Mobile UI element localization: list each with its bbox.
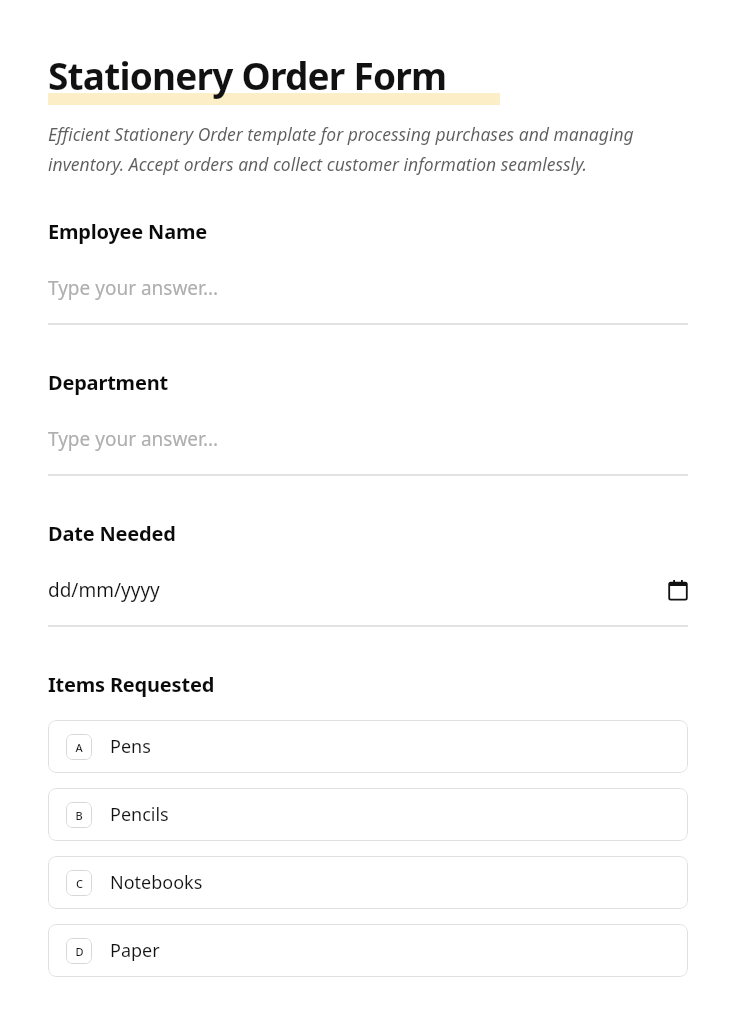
staticText: Type your answer... [48, 275, 688, 301]
button[interactable]: dd/mm/yyyy [48, 577, 688, 603]
staticText: Items Requested [48, 671, 215, 698]
staticText: Stationery Order Form [48, 50, 447, 100]
button[interactable]: C [48, 856, 688, 909]
other: Open date picker [668, 580, 688, 600]
button[interactable]: Type your answer... [48, 426, 688, 452]
staticText: Notebooks [110, 870, 203, 895]
staticText: Pencils [110, 802, 169, 827]
staticText: dd/mm/yyyy [48, 577, 668, 603]
staticText: D [75, 944, 84, 959]
button[interactable]: B [48, 788, 688, 841]
staticText: A [75, 740, 83, 755]
staticText: Date Needed [48, 520, 176, 547]
staticText: B [75, 808, 83, 823]
button[interactable]: A [48, 720, 688, 773]
button[interactable]: Type your answer... [48, 275, 688, 301]
staticText: Pens [110, 734, 151, 759]
staticText: Department [48, 369, 168, 396]
staticText: C [76, 876, 83, 891]
staticText: Type your answer... [48, 426, 688, 452]
staticText: Paper [110, 938, 160, 963]
button[interactable]: D [48, 924, 688, 977]
staticText: Employee Name [48, 218, 207, 245]
staticText: Efficient Stationery Order template for … [48, 122, 688, 176]
